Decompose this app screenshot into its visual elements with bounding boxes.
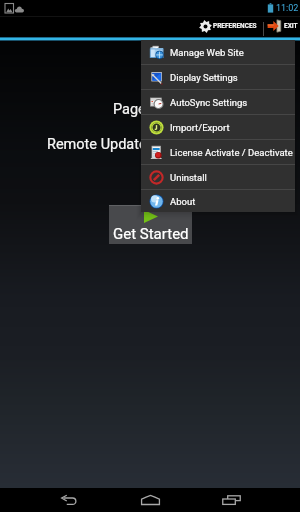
staticText: PageScope [113,101,187,118]
button[interactable]: About [141,190,295,212]
button[interactable]: License Activate / Deactivate [141,140,295,164]
staticText: Manage Web Site [170,47,244,58]
button[interactable]: Manage Web Site [141,40,295,64]
staticText: License Activate / Deactivate [170,147,293,158]
staticText: EXIT [284,22,298,30]
staticText: Remote Update Tool for Android [47,136,254,153]
button[interactable]: AutoSync Settings [141,90,295,114]
staticText: About [170,196,196,207]
button[interactable]: Uninstall [141,165,295,189]
staticText: 11:02 [276,3,299,14]
button[interactable]: Get Started [109,205,192,244]
button[interactable]: PREFERENCES [197,15,263,37]
button[interactable]: EXIT [264,15,300,37]
button[interactable]: Import/Export [141,115,295,139]
button[interactable]: Display Settings [141,65,295,89]
button[interactable]: Recent apps [191,488,271,512]
staticText: PREFERENCES [213,22,257,30]
staticText: Get Started [113,225,189,243]
staticText: AutoSync Settings [170,97,248,108]
button[interactable]: Home [110,488,190,512]
button[interactable]: Back [29,488,109,512]
staticText: Uninstall [170,172,207,183]
staticText: Display Settings [170,72,238,83]
staticText: Import/Export [170,122,230,133]
